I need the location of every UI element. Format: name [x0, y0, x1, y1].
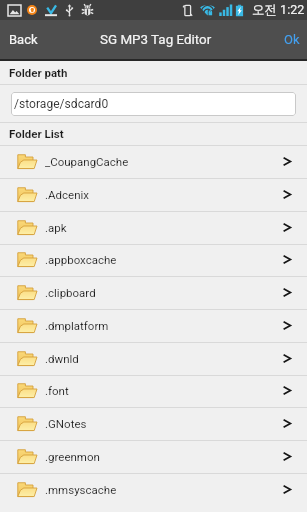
button[interactable]: .GNotes — [0, 408, 307, 440]
staticText: SG MP3 Tag Editor — [100, 32, 212, 48]
button[interactable]: .dwnld — [0, 343, 307, 375]
staticText: .appboxcache — [45, 253, 117, 266]
button[interactable]: .apk — [0, 212, 307, 244]
button[interactable]: .appboxcache — [0, 245, 307, 276]
staticText: .apk — [45, 221, 67, 234]
staticText: .dwnld — [45, 352, 79, 365]
staticText: Back — [9, 32, 38, 47]
button[interactable]: .Adcenix — [0, 179, 307, 211]
staticText: .GNotes — [45, 417, 87, 430]
staticText: /storage/sdcard0 — [14, 97, 109, 111]
staticText: .Adcenix — [45, 188, 89, 201]
staticText: .greenmon — [45, 450, 100, 463]
button[interactable]: Back — [0, 20, 55, 59]
staticText: Folder List — [9, 127, 64, 140]
button[interactable]: .mmsyscache — [0, 474, 307, 506]
button[interactable]: _CoupangCache — [0, 146, 307, 178]
button[interactable]: Ok — [271, 20, 307, 59]
button[interactable]: .clipboard — [0, 277, 307, 309]
button[interactable]: /storage/sdcard0 — [11, 92, 296, 116]
staticText: .clipboard — [45, 286, 96, 299]
staticText: .mmsyscache — [45, 483, 117, 496]
button[interactable]: .greenmon — [0, 441, 307, 473]
button[interactable]: .font — [0, 376, 307, 407]
staticText: .font — [45, 384, 69, 397]
button[interactable]: .dmplatform — [0, 310, 307, 342]
staticText: _CoupangCache — [45, 155, 129, 168]
staticText: .dmplatform — [45, 319, 109, 332]
staticText: Ok — [284, 32, 300, 47]
staticText: Folder path — [9, 66, 68, 79]
staticText: 오전 1:22 — [252, 2, 305, 18]
